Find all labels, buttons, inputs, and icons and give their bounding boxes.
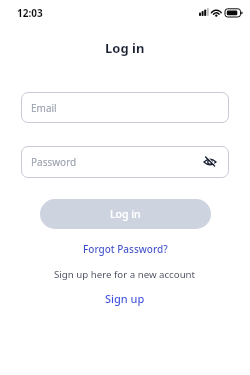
staticText: Sign up bbox=[105, 291, 145, 306]
staticText: Forgot Password? bbox=[83, 242, 168, 256]
button[interactable]: Log in bbox=[40, 199, 211, 229]
staticText: Log in bbox=[105, 39, 145, 57]
button[interactable]: Sign up bbox=[105, 291, 145, 306]
button[interactable]: Email bbox=[21, 92, 229, 123]
staticText: Log in bbox=[110, 207, 141, 221]
button[interactable] bbox=[203, 155, 217, 169]
button[interactable]: Password bbox=[21, 146, 229, 178]
staticText: 12:03 bbox=[17, 6, 43, 20]
staticText: Sign up here for a new account bbox=[54, 268, 196, 281]
staticText: Email bbox=[31, 101, 57, 115]
button[interactable]: Forgot Password? bbox=[83, 242, 168, 256]
staticText: Password bbox=[31, 155, 77, 169]
